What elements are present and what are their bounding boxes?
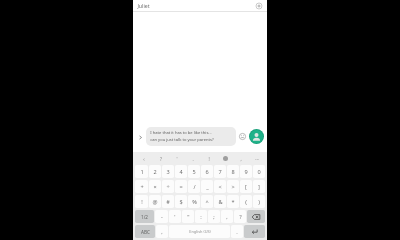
button[interactable]: Contact avatar — [249, 129, 264, 144]
staticText: 4 — [179, 168, 183, 176]
button[interactable]: _ — [201, 180, 213, 193]
button[interactable]: Enter — [244, 225, 265, 238]
staticText: 3 — [166, 168, 170, 176]
button[interactable]: # — [162, 195, 174, 208]
button[interactable]: I hate that it has to be like this... — [146, 127, 236, 146]
button[interactable]: ' — [169, 210, 181, 223]
button[interactable]: ··· — [249, 153, 265, 164]
staticText: > — [231, 183, 235, 191]
button[interactable]: Backspace — [247, 210, 265, 223]
button[interactable]: ! — [135, 195, 148, 208]
staticText: ; — [213, 213, 215, 221]
button[interactable]: + — [135, 180, 148, 193]
staticText: ‹ — [143, 156, 145, 162]
button[interactable]: ( — [240, 195, 252, 208]
button[interactable]: . — [231, 225, 243, 238]
button[interactable]: @ — [149, 195, 161, 208]
button[interactable]: ^ — [201, 195, 213, 208]
button[interactable]: ) — [253, 195, 265, 208]
button[interactable]: ÷ — [162, 180, 174, 193]
button[interactable]: & — [214, 195, 226, 208]
button[interactable]: % — [188, 195, 200, 208]
button[interactable]: 9 — [240, 165, 252, 178]
staticText: , — [161, 228, 163, 236]
staticText: ] — [258, 183, 260, 191]
button[interactable]: Juliet — [137, 2, 254, 9]
button[interactable]: 5 — [188, 165, 200, 178]
button[interactable]: 3 — [162, 165, 174, 178]
staticText: ! — [208, 156, 210, 162]
staticText: $ — [179, 198, 183, 206]
button[interactable]: 7 — [214, 165, 226, 178]
staticText: % — [192, 198, 197, 206]
staticText: # — [166, 198, 170, 206]
staticText: ? — [160, 156, 162, 162]
staticText: ABC — [141, 229, 150, 235]
button[interactable]: : — [195, 210, 207, 223]
button[interactable] — [217, 153, 233, 164]
button[interactable]: 0 — [253, 165, 265, 178]
staticText: can you just talk to your parents? — [150, 137, 214, 143]
staticText: [ — [245, 183, 247, 191]
button[interactable]: [ — [240, 180, 252, 193]
staticText: , — [226, 213, 228, 221]
staticText: ÷ — [166, 183, 170, 191]
button[interactable]: Space — [169, 225, 230, 238]
button[interactable]: - — [155, 210, 168, 223]
staticText: 7 — [218, 168, 222, 176]
staticText: _ — [206, 183, 209, 191]
button[interactable]: Add reaction — [238, 132, 247, 141]
staticText: " — [187, 213, 190, 221]
button[interactable]: / — [188, 180, 200, 193]
button[interactable]: ‹ — [135, 153, 152, 164]
staticText: ' — [174, 213, 176, 221]
button[interactable]: 4 — [175, 165, 187, 178]
button[interactable]: 2 — [149, 165, 161, 178]
staticText: I hate that it has to be like this... — [150, 130, 212, 136]
staticText: English (US) — [189, 229, 211, 234]
staticText: ? — [239, 213, 242, 221]
button[interactable]: $ — [175, 195, 187, 208]
staticText: < — [218, 183, 222, 191]
staticText: . — [236, 228, 238, 236]
button[interactable]: 1/2 — [135, 210, 154, 223]
button[interactable]: ABC — [135, 225, 155, 238]
button[interactable]: " — [182, 210, 194, 223]
button[interactable]: < — [214, 180, 226, 193]
button[interactable]: 6 — [201, 165, 213, 178]
button[interactable]: × — [149, 180, 161, 193]
button[interactable]: = — [175, 180, 187, 193]
button[interactable]: ; — [208, 210, 220, 223]
staticText: & — [218, 198, 223, 206]
button[interactable]: , — [221, 210, 233, 223]
staticText: + — [140, 183, 144, 191]
staticText: 9 — [244, 168, 248, 176]
staticText: 2 — [153, 168, 157, 176]
staticText: ( — [245, 198, 247, 206]
button[interactable]: 8 — [227, 165, 239, 178]
button[interactable]: ] — [253, 180, 265, 193]
button[interactable]: * — [227, 195, 239, 208]
staticText: 8 — [231, 168, 235, 176]
button[interactable]: 1 — [135, 165, 148, 178]
staticText: × — [153, 183, 157, 191]
staticText: : — [200, 213, 202, 221]
staticText: - — [161, 213, 163, 221]
button[interactable]: ? — [152, 153, 169, 164]
button[interactable]: ! — [201, 153, 217, 164]
staticText: ^ — [205, 198, 209, 206]
staticText: 1 — [140, 168, 144, 176]
button[interactable]: ? — [234, 210, 246, 223]
staticText: , — [240, 156, 242, 162]
button[interactable]: Expand — [135, 132, 145, 142]
button[interactable]: , — [156, 225, 168, 238]
button[interactable]: Add — [254, 1, 263, 10]
staticText: / — [193, 183, 196, 191]
staticText: ··· — [255, 156, 259, 162]
staticText: 5 — [192, 168, 196, 176]
button[interactable]: > — [227, 180, 239, 193]
staticText: 6 — [205, 168, 209, 176]
